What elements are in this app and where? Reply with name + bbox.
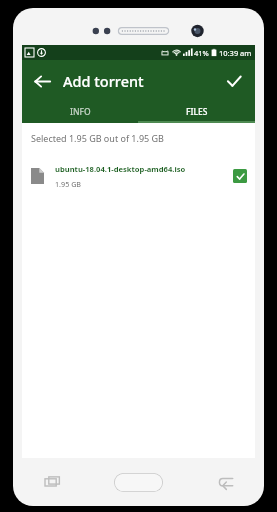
staticText: FILES — [186, 106, 208, 118]
staticText: 1.95 GB — [55, 179, 82, 189]
button[interactable]: Home — [90, 458, 187, 506]
staticText: Add torrent — [63, 71, 144, 91]
staticText: 41% — [194, 48, 209, 58]
button[interactable]: INFO — [22, 101, 138, 123]
button[interactable]: Confirm — [218, 65, 250, 97]
staticText: 10:39 am — [219, 48, 252, 58]
staticText: ubuntu-18.04.1-desktop-amd64.iso — [55, 164, 186, 174]
button[interactable]: Recent apps — [13, 458, 90, 506]
button[interactable]: Selected — [233, 169, 247, 183]
button[interactable]: FILES — [138, 101, 255, 123]
button[interactable]: Back — [26, 65, 58, 97]
staticText: INFO — [70, 106, 91, 118]
button[interactable]: Back — [187, 458, 264, 506]
button[interactable]: ubuntu-18.04.1-desktop-amd64.iso — [22, 158, 255, 194]
staticText: Selected 1.95 GB out of 1.95 GB — [31, 132, 164, 144]
